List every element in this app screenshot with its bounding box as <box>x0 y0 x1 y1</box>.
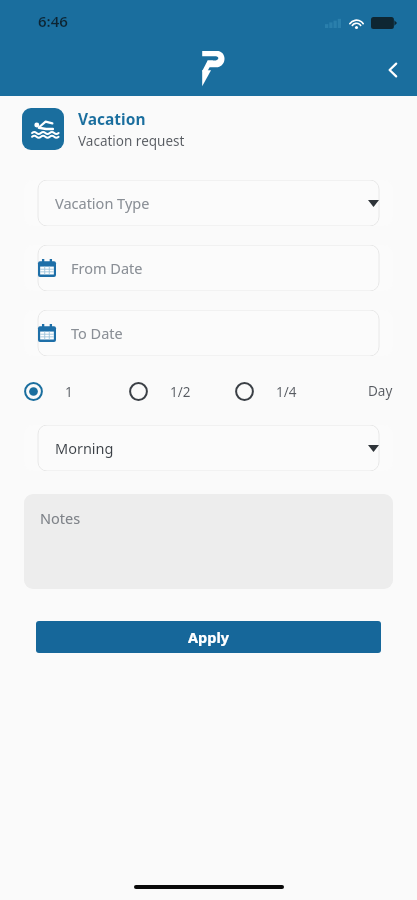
staticText: 6:46 <box>38 11 68 31</box>
staticText: Day <box>368 382 393 400</box>
button[interactable]: 1/2 <box>129 382 235 401</box>
staticText: Morning <box>55 438 114 458</box>
staticText: 1 <box>65 383 73 401</box>
staticText: Apply <box>188 627 229 647</box>
staticText: 1/2 <box>170 383 191 401</box>
staticText: To Date <box>71 323 123 343</box>
staticText: 1/4 <box>276 383 297 401</box>
button[interactable]: From Date <box>24 245 393 291</box>
staticText: Vacation request <box>78 132 185 150</box>
button[interactable]: Vacation <box>22 108 395 150</box>
button[interactable]: Vacation Type <box>24 180 393 226</box>
button[interactable]: 1/4 <box>235 382 341 401</box>
staticText: Vacation <box>78 108 146 129</box>
button[interactable]: To Date <box>24 310 393 356</box>
staticText: From Date <box>71 258 143 278</box>
button[interactable]: Apply <box>36 621 381 653</box>
staticText: Notes <box>40 508 81 528</box>
staticText: Vacation Type <box>55 193 150 213</box>
button[interactable]: Back <box>369 46 417 94</box>
button[interactable]: Notes <box>24 494 393 589</box>
button[interactable]: Morning <box>24 425 393 471</box>
button[interactable]: 1 <box>24 382 129 401</box>
